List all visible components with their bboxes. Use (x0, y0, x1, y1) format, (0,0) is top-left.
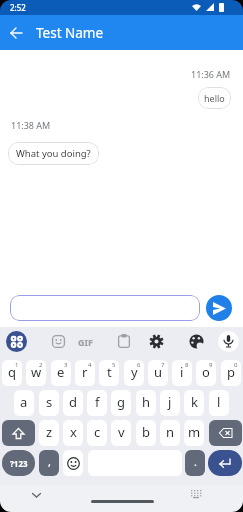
staticText: u (154, 363, 163, 381)
button[interactable]: j (160, 390, 180, 416)
button[interactable]: g (111, 390, 131, 416)
button[interactable]: ?123 (2, 450, 35, 476)
staticText: 11:36 AM (191, 68, 231, 80)
button[interactable] (52, 335, 65, 348)
button[interactable]: x (63, 420, 83, 446)
button[interactable] (91, 500, 154, 503)
staticText: q (8, 363, 16, 381)
staticText: 6 (137, 361, 141, 369)
button[interactable]: u (148, 360, 168, 386)
button[interactable]: d (63, 390, 83, 416)
staticText: e (57, 363, 65, 381)
button[interactable]: c (87, 420, 107, 446)
staticText: hello (204, 92, 225, 104)
staticText: y (131, 363, 138, 381)
button[interactable]: a (14, 390, 34, 416)
staticText: r (82, 363, 88, 381)
staticText: 4 (88, 361, 92, 369)
staticText: p (227, 363, 235, 381)
button[interactable] (118, 334, 130, 348)
button[interactable] (2, 420, 35, 446)
button[interactable]: y (124, 360, 144, 386)
button[interactable]: hello (198, 87, 231, 109)
staticText: m (188, 423, 201, 441)
staticText: 3 (64, 361, 68, 369)
staticText: 1 (15, 361, 19, 369)
staticText: What you doing? (16, 147, 91, 160)
button[interactable] (209, 420, 242, 446)
staticText: x (70, 423, 77, 441)
staticText: f (95, 393, 100, 411)
button[interactable]: z (39, 420, 59, 446)
staticText: a (20, 393, 28, 411)
staticText: j (168, 393, 172, 411)
staticText: g (117, 393, 125, 411)
button[interactable]: s (39, 390, 59, 416)
button[interactable]: . (185, 450, 205, 476)
button[interactable]: q (2, 360, 22, 386)
button[interactable] (206, 295, 232, 321)
staticText: 8 (185, 361, 189, 369)
staticText: h (142, 393, 151, 411)
button[interactable]: e (51, 360, 71, 386)
staticText: 9 (209, 361, 213, 369)
staticText: 2:52 (10, 2, 26, 13)
staticText: w (31, 363, 42, 381)
staticText: 7 (161, 361, 165, 369)
staticText: t (107, 363, 112, 381)
button[interactable] (191, 490, 202, 498)
staticText: i (180, 363, 184, 381)
button[interactable] (10, 295, 200, 321)
button[interactable] (218, 331, 239, 352)
staticText: , (48, 454, 51, 469)
button[interactable]: GIF (78, 336, 93, 348)
staticText: ?123 (10, 458, 28, 469)
staticText: Test Name (36, 24, 104, 42)
button[interactable] (32, 493, 41, 498)
button[interactable]: r (75, 360, 95, 386)
staticText: z (46, 423, 53, 441)
button[interactable]: , (39, 450, 59, 476)
staticText: d (69, 393, 77, 411)
staticText: . (194, 454, 197, 469)
staticText: n (166, 423, 175, 441)
staticText: b (142, 423, 150, 441)
staticText: 0 (234, 361, 238, 369)
staticText: c (94, 423, 101, 441)
staticText: o (202, 363, 210, 381)
button[interactable]: p (221, 360, 241, 386)
staticText: k (191, 393, 198, 411)
staticText: 11:38 AM (11, 119, 51, 131)
button[interactable] (208, 450, 242, 476)
button[interactable]: What you doing? (8, 142, 99, 165)
button[interactable]: n (160, 420, 180, 446)
button[interactable]: b (136, 420, 156, 446)
button[interactable]: o (196, 360, 216, 386)
button[interactable] (6, 22, 28, 44)
button[interactable]: w (26, 360, 46, 386)
button[interactable] (189, 334, 204, 349)
staticText: 2 (39, 361, 43, 369)
button[interactable]: m (184, 420, 204, 446)
staticText: l (217, 393, 221, 411)
button[interactable]: v (111, 420, 131, 446)
button[interactable]: k (184, 390, 204, 416)
staticText: 5 (112, 361, 116, 369)
staticText: v (118, 423, 125, 441)
button[interactable]: h (136, 390, 156, 416)
button[interactable] (6, 331, 27, 352)
button[interactable]: f (87, 390, 107, 416)
button[interactable] (149, 334, 164, 349)
button[interactable]: t (99, 360, 119, 386)
button[interactable] (63, 450, 83, 476)
button[interactable]: i (172, 360, 192, 386)
staticText: s (46, 393, 53, 411)
button[interactable]: l (209, 390, 229, 416)
